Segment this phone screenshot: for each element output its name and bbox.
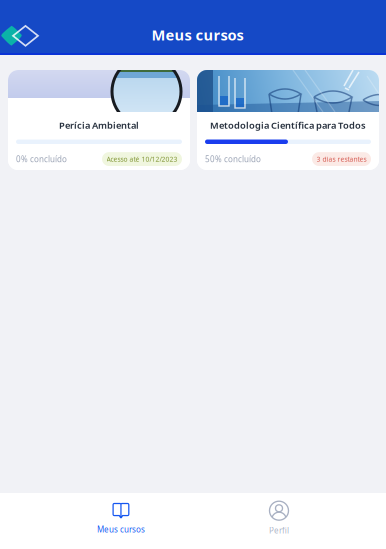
button[interactable]: Perfil bbox=[200, 502, 358, 535]
staticText: Perfil bbox=[269, 525, 289, 536]
staticText: Perícia Ambiental bbox=[59, 119, 139, 131]
button[interactable]: Metodologia Científica para Todos bbox=[197, 70, 379, 170]
staticText: 3 dias restantes bbox=[316, 155, 366, 163]
button[interactable]: Perícia Ambiental bbox=[8, 70, 190, 170]
staticText: Acesso até 10/12/2023 bbox=[106, 155, 177, 163]
staticText: Meus cursos bbox=[151, 25, 243, 44]
staticText: 0% concluído bbox=[16, 154, 67, 164]
button[interactable]: Meus cursos bbox=[42, 502, 200, 535]
staticText: Meus cursos bbox=[97, 524, 145, 535]
staticText: Metodologia Científica para Todos bbox=[210, 119, 366, 131]
staticText: 50% concluído bbox=[205, 154, 261, 164]
